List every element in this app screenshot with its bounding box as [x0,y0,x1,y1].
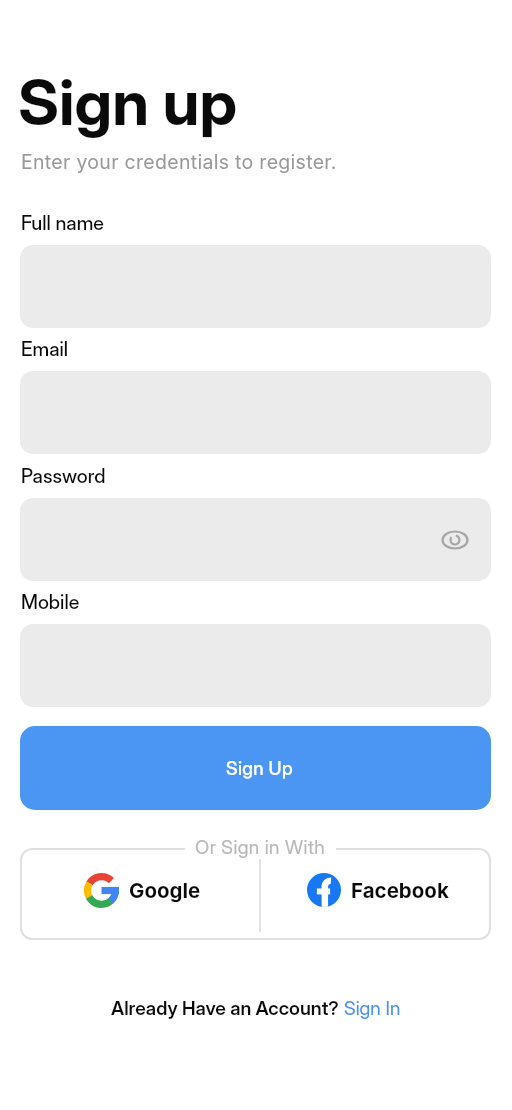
staticText: Already Have an Account? [111,997,344,1020]
staticText: Full name [21,211,104,235]
button[interactable]: Facebook [261,848,491,940]
button[interactable]: Sign In [344,997,401,1020]
staticText: Or Sign in With [195,836,326,859]
staticText: Google [129,878,201,903]
button[interactable] [20,498,491,581]
button[interactable]: Google [20,848,259,940]
staticText: Sign up [18,64,238,140]
staticText: Mobile [21,590,80,614]
staticText: Email [21,337,69,361]
staticText: Password [21,464,106,488]
staticText: Sign Up [226,757,293,779]
button[interactable]: Sign Up [20,726,491,810]
staticText: Enter your credentials to register. [21,150,337,174]
staticText: Facebook [351,878,449,903]
